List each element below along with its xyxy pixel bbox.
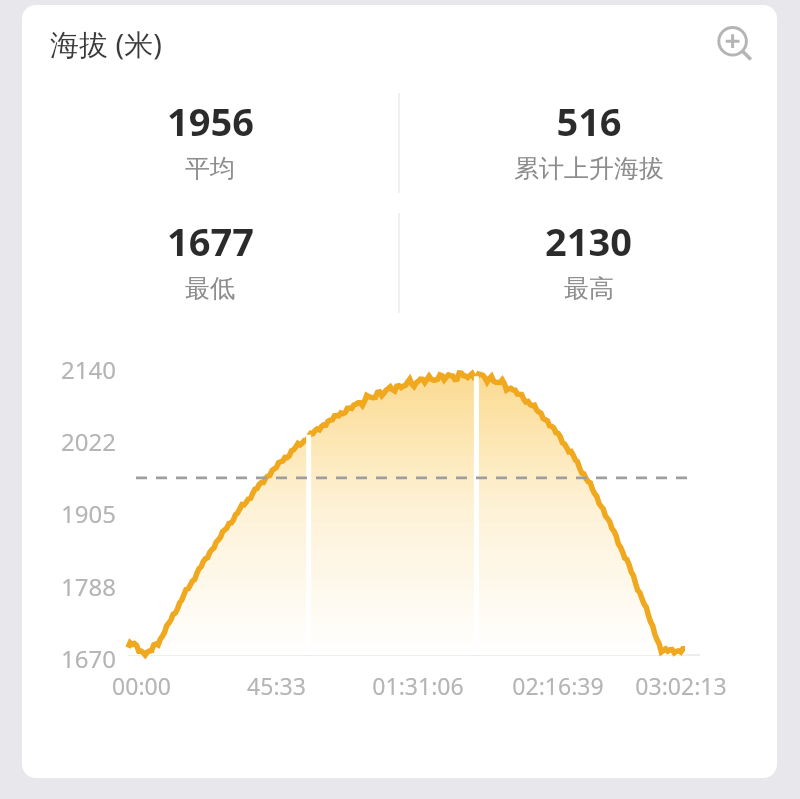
staticText: 平均 bbox=[185, 153, 235, 184]
staticText: 2140 bbox=[61, 353, 116, 386]
staticText: 03:02:13 bbox=[635, 670, 727, 701]
staticText: 2130 bbox=[545, 215, 632, 267]
staticText: 00:00 bbox=[112, 670, 171, 701]
staticText: 1788 bbox=[61, 570, 116, 603]
staticText: 累计上升海拔 bbox=[514, 153, 664, 184]
staticText: 最高 bbox=[564, 273, 614, 304]
button[interactable]: 1956 bbox=[22, 83, 398, 184]
staticText: 45:33 bbox=[247, 670, 306, 701]
staticText: 1905 bbox=[61, 497, 116, 530]
staticText: 1670 bbox=[61, 642, 116, 675]
staticText: 1677 bbox=[167, 215, 254, 267]
button[interactable]: 1677 bbox=[22, 203, 398, 304]
staticText: 02:16:39 bbox=[512, 670, 604, 701]
staticText: 1956 bbox=[167, 95, 254, 147]
staticText: 2022 bbox=[61, 425, 116, 458]
staticText: 01:31:06 bbox=[372, 670, 464, 701]
button[interactable]: 2130 bbox=[400, 203, 777, 304]
staticText: 海拔 (米) bbox=[50, 24, 162, 64]
button[interactable]: Zoom in bbox=[709, 18, 761, 70]
staticText: 516 bbox=[556, 95, 622, 147]
button[interactable]: 516 bbox=[400, 83, 777, 184]
staticText: 最低 bbox=[185, 273, 235, 304]
